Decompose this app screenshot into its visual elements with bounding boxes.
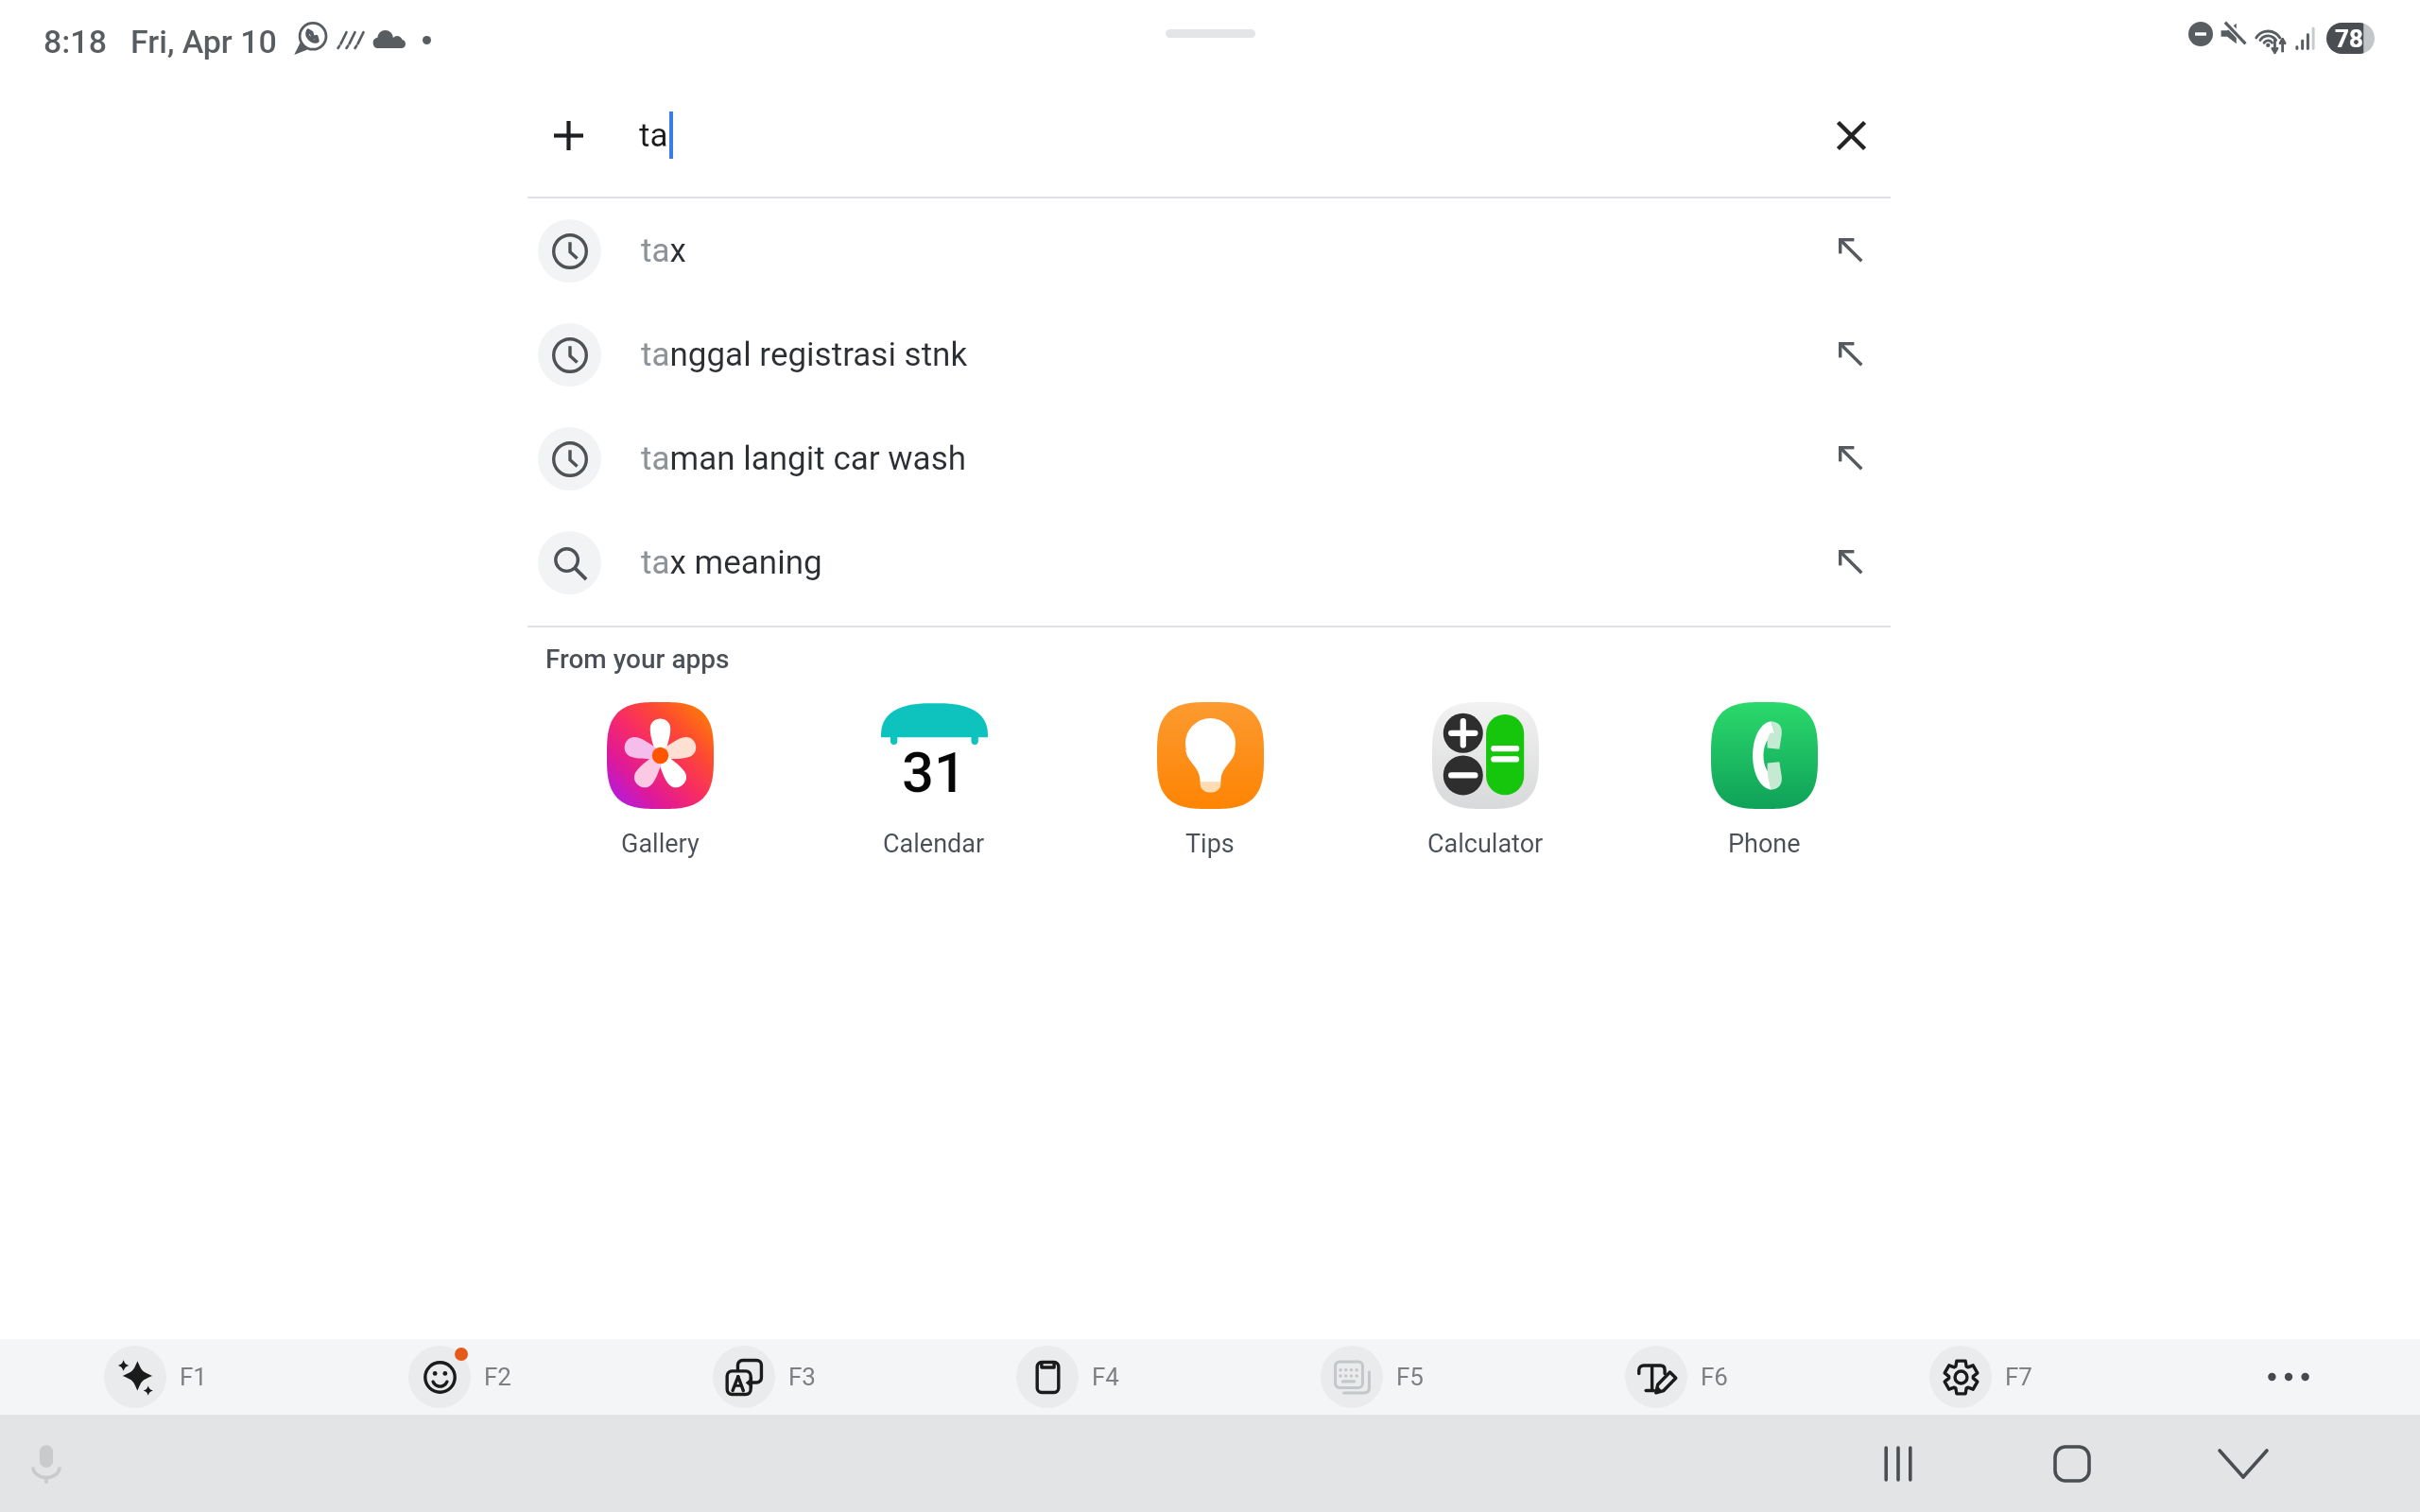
button[interactable]: More options — [2251, 1339, 2326, 1415]
button[interactable]: Phone — [1641, 702, 1887, 872]
staticText: Fri, Apr 10 — [130, 23, 277, 60]
staticText: F4 — [1092, 1363, 1119, 1391]
button[interactable]: tax — [0, 198, 2420, 302]
staticText: 31 — [902, 739, 967, 805]
staticText: F7 — [2005, 1363, 2032, 1391]
button[interactable]: Home — [2020, 1415, 2124, 1512]
staticText: tax meaning — [641, 543, 822, 582]
button[interactable]: tax meaning — [0, 510, 2420, 614]
button[interactable]: F5 — [1321, 1344, 1424, 1410]
button[interactable]: Hide keyboard — [2191, 1415, 2295, 1512]
button[interactable]: Insert suggestion — [1811, 419, 1891, 498]
button[interactable]: F6 — [1625, 1344, 1728, 1410]
staticText: tax — [641, 232, 686, 270]
staticText: 78 — [2335, 25, 2363, 53]
staticText: F1 — [180, 1363, 207, 1391]
button[interactable]: F4 — [1016, 1344, 1119, 1410]
button[interactable]: Add — [528, 95, 608, 175]
button[interactable]: Voice input — [9, 1427, 83, 1501]
button[interactable]: tanggal registrasi stnk — [0, 302, 2420, 406]
button[interactable]: Gallery — [537, 702, 783, 872]
button[interactable]: Clear search — [1811, 95, 1891, 175]
button[interactable]: Insert suggestion — [1811, 211, 1891, 290]
button[interactable]: Tips — [1087, 702, 1333, 872]
staticText: F2 — [484, 1363, 511, 1391]
button[interactable]: Insert suggestion — [1811, 523, 1891, 602]
button[interactable]: F2 — [408, 1344, 511, 1410]
staticText: taman langit car wash — [641, 439, 966, 478]
staticText: 8:18 — [43, 23, 107, 60]
button[interactable]: taman langit car wash — [0, 406, 2420, 510]
button[interactable]: F7 — [1929, 1344, 2032, 1410]
staticText: Gallery — [621, 829, 700, 859]
staticText: F6 — [1701, 1363, 1728, 1391]
button[interactable]: Recents — [1846, 1415, 1950, 1512]
staticText: Phone — [1728, 829, 1801, 859]
button[interactable]: Calculator — [1362, 702, 1608, 872]
staticText: Tips — [1185, 829, 1235, 859]
staticText: Calendar — [883, 829, 985, 859]
staticText: tanggal registrasi stnk — [641, 335, 968, 374]
staticText: ta — [639, 116, 668, 155]
staticText: F5 — [1396, 1363, 1424, 1391]
button[interactable]: F3 — [713, 1344, 816, 1410]
button[interactable]: F1 — [104, 1344, 207, 1410]
button[interactable]: Insert suggestion — [1811, 315, 1891, 394]
button[interactable]: 31 — [811, 702, 1057, 872]
staticText: From your apps — [545, 644, 730, 675]
staticText: F3 — [788, 1363, 816, 1391]
staticText: Calculator — [1427, 829, 1544, 859]
